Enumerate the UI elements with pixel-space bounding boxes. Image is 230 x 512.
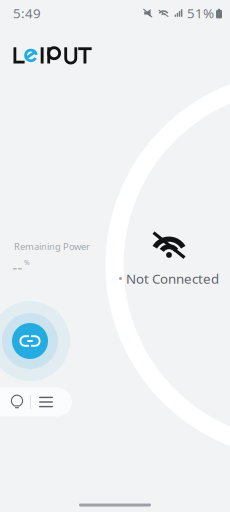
staticText: Remaining Power [14, 240, 90, 253]
staticText: 5:49 [13, 4, 41, 22]
button[interactable]: Menu [31, 387, 61, 416]
staticText: % [24, 258, 30, 267]
staticText: Not Connected [126, 270, 219, 287]
staticText: 51% [187, 4, 214, 22]
button[interactable]: Connect device [12, 323, 48, 359]
staticText: -- [13, 258, 23, 277]
button[interactable]: Scenes [4, 387, 30, 416]
